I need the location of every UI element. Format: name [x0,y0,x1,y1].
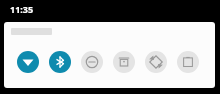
button[interactable]: Flashlight [113,51,135,73]
button[interactable]: Bluetooth [49,51,71,73]
staticText: 11:35 [10,3,34,15]
button[interactable]: Do not disturb [81,51,103,73]
button[interactable]: Auto-rotate [145,51,167,73]
button[interactable]: Battery saver [177,51,199,73]
button[interactable]: Wi-Fi [17,51,39,73]
